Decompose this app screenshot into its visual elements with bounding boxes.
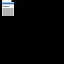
staticText: 9:41 bbox=[2, 0, 4, 1]
button[interactable]: Profile bbox=[11, 0, 14, 2]
